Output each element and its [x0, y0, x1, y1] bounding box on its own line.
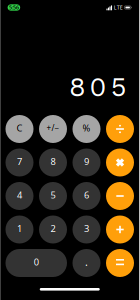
- staticText: 2: [50, 222, 55, 234]
- button[interactable]: .: [72, 249, 100, 277]
- staticText: .: [85, 255, 88, 269]
- button[interactable]: 0: [5, 249, 67, 277]
- staticText: 5: [111, 71, 127, 103]
- button[interactable]: Divide: [106, 115, 134, 143]
- staticText: 5:56: [9, 4, 19, 11]
- button[interactable]: Subtract: [106, 182, 134, 210]
- staticText: LTE: [114, 4, 123, 11]
- button[interactable]: +/−: [39, 115, 67, 143]
- button[interactable]: C: [5, 115, 33, 143]
- staticText: 8: [69, 71, 86, 103]
- staticText: 3: [84, 222, 89, 234]
- button[interactable]: Add: [106, 215, 134, 243]
- button[interactable]: 6: [72, 182, 100, 210]
- button[interactable]: %: [72, 115, 100, 143]
- staticText: +/−: [46, 122, 59, 133]
- button[interactable]: 5: [39, 182, 67, 210]
- staticText: 8: [50, 155, 55, 167]
- staticText: 5: [50, 189, 55, 201]
- staticText: 4: [17, 189, 22, 201]
- staticText: 6: [84, 189, 89, 201]
- button[interactable]: 9: [72, 148, 100, 176]
- button[interactable]: 1: [5, 215, 33, 243]
- staticText: 0: [34, 256, 39, 268]
- button[interactable]: Equals: [106, 249, 134, 277]
- button[interactable]: 4: [5, 182, 33, 210]
- staticText: 1: [17, 222, 22, 234]
- staticText: %: [82, 122, 90, 134]
- staticText: 0: [90, 71, 107, 103]
- staticText: 9: [84, 155, 89, 167]
- staticText: 7: [17, 155, 22, 167]
- button[interactable]: 7: [5, 148, 33, 176]
- button[interactable]: 3: [72, 215, 100, 243]
- staticText: C: [16, 122, 22, 134]
- button[interactable]: 8: [39, 148, 67, 176]
- button[interactable]: 2: [39, 215, 67, 243]
- button[interactable]: Multiply: [106, 148, 134, 176]
